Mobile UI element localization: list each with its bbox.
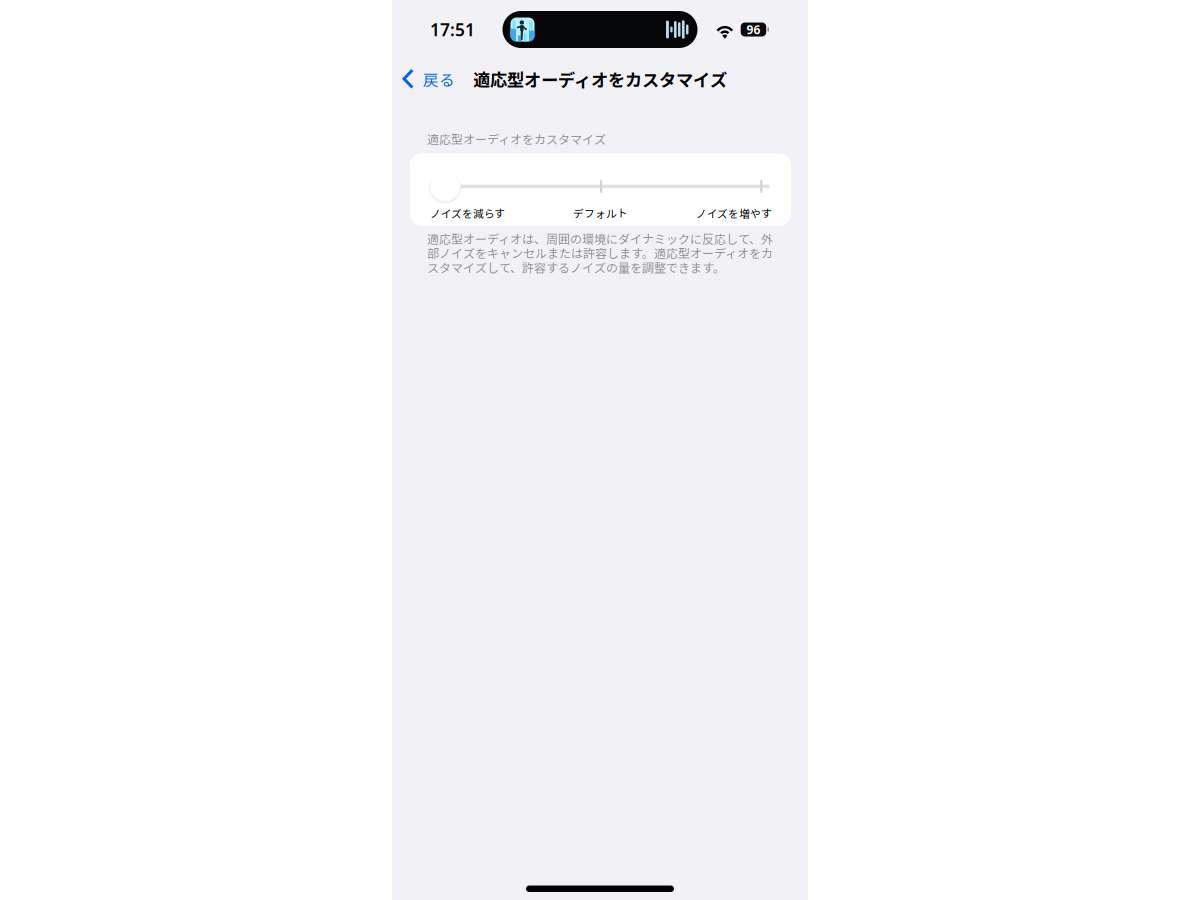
staticText: 17:51 — [430, 18, 475, 41]
staticText: 適応型オーディオをカスタマイズ — [427, 130, 606, 147]
button[interactable]: 戻る — [392, 64, 459, 94]
staticText: ノイズを増やす — [696, 205, 772, 221]
staticText: 戻る — [423, 68, 455, 90]
staticText: ノイズを減らす — [430, 205, 505, 221]
button[interactable]: 適応型オーディオのノイズ量 — [410, 153, 791, 203]
staticText: 96 — [746, 21, 760, 37]
staticText: 適応型オーディオは、周囲の環境にダイナミックに反応して、外部ノイズをキャンセルま… — [427, 230, 773, 276]
staticText: 適応型オーディオをカスタマイズ — [473, 66, 727, 91]
staticText: デフォルト — [573, 205, 628, 221]
